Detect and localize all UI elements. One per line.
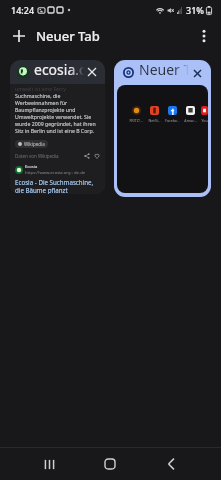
button[interactable]: You... — [201, 106, 208, 123]
staticText: Daten von Wikipedia — [15, 153, 59, 159]
staticText: Amaz... — [184, 118, 197, 123]
staticText: ecosia.org — [34, 60, 84, 79]
button[interactable]: Facebo... — [165, 106, 179, 123]
staticText: 14:24 — [11, 4, 35, 16]
staticText: You... — [201, 118, 208, 123]
staticText: wurde 2009 gegründet, hat ihren — [15, 120, 96, 127]
button[interactable]: Tab schließen — [84, 64, 100, 80]
staticText: Suchmaschine, die — [15, 92, 61, 99]
button[interactable]: Letzte Apps — [0, 448, 98, 480]
button[interactable]: Tab schließen — [189, 65, 205, 81]
staticText: FRITZ!... — [129, 118, 143, 123]
button[interactable]: Netfli... — [147, 106, 161, 123]
button[interactable]: FRITZ!... — [129, 106, 143, 123]
button[interactable]: Zurück — [122, 448, 221, 480]
staticText: Wikipedia — [24, 141, 45, 147]
staticText: Neuer Tab — [139, 60, 189, 79]
staticText: https://www.ecosia.org › de-de — [25, 170, 86, 176]
staticText: Umweltprojekte verwendet. Sie — [15, 113, 92, 120]
staticText: Netfli... — [148, 118, 161, 123]
staticText: Baumpflanzprojekte und — [15, 106, 76, 113]
staticText: die Bäume pflanzt — [15, 186, 68, 194]
staticText: Neuer Tab — [36, 27, 100, 45]
staticText: Ecosia — [25, 164, 38, 170]
button[interactable]: Neuen Tab hinzufügen — [6, 23, 32, 49]
button[interactable]: Startbildschirm — [98, 448, 122, 480]
button[interactable]: Neuer Tab — [114, 60, 211, 197]
staticText: Werbeeinnahmen für — [15, 99, 68, 106]
staticText: Sitz in Berlin und ist eine B Corp. — [15, 127, 95, 134]
button[interactable]: ecosia.org — [10, 60, 105, 194]
staticText: Ecosia - Die Suchmaschine, — [15, 178, 94, 186]
staticText: Facebo... — [165, 118, 179, 123]
button[interactable]: Weitere Optionen — [191, 23, 217, 49]
staticText: umwelt ist eine Ferry — [15, 85, 66, 92]
staticText: 31% — [186, 4, 204, 16]
button[interactable]: Amaz... — [183, 106, 197, 123]
